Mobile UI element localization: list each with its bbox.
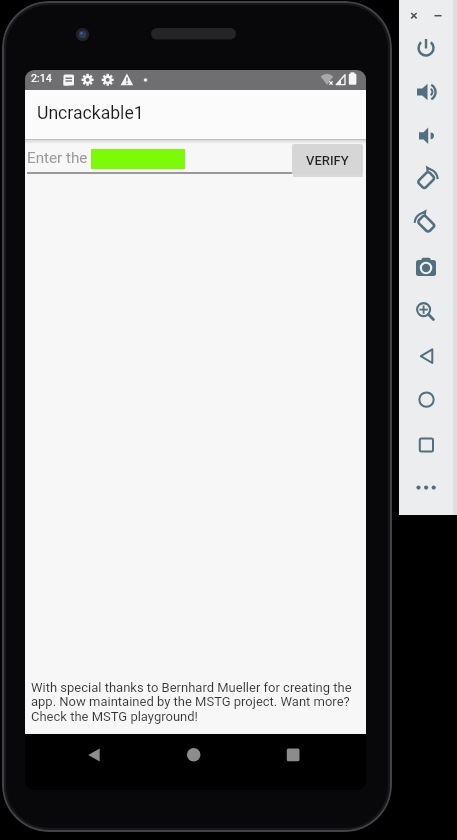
- button[interactable]: [27, 142, 289, 174]
- button[interactable]: [404, 115, 448, 157]
- button[interactable]: [404, 421, 448, 463]
- button[interactable]: [184, 747, 204, 767]
- button[interactable]: [87, 747, 107, 767]
- button[interactable]: [404, 71, 448, 113]
- staticText: Uncrackable1: [37, 103, 144, 124]
- button[interactable]: [404, 28, 448, 70]
- button[interactable]: [404, 465, 448, 507]
- button[interactable]: [404, 334, 448, 376]
- button[interactable]: [281, 747, 301, 767]
- staticText: Enter the: [27, 149, 88, 167]
- button[interactable]: [404, 290, 448, 332]
- staticText: 2:14: [31, 72, 52, 85]
- button[interactable]: [404, 246, 448, 288]
- staticText: With special thanks to Bernhard Mueller …: [31, 680, 352, 725]
- button[interactable]: [404, 377, 448, 419]
- button[interactable]: [404, 203, 448, 245]
- staticText: VERIFY: [306, 153, 349, 168]
- button[interactable]: VERIFY: [292, 144, 363, 175]
- button[interactable]: [406, 8, 422, 24]
- button[interactable]: [430, 8, 446, 24]
- button[interactable]: [404, 159, 448, 201]
